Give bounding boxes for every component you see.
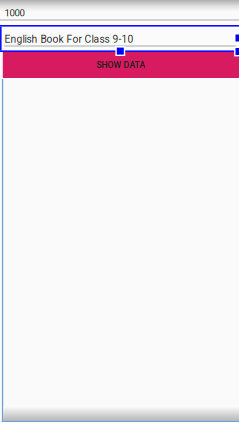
button[interactable]: SHOW DATA (0, 52, 239, 78)
staticText: 1000 (4, 7, 24, 19)
staticText: English Book For Class 9-10 (5, 33, 134, 45)
button[interactable]: English Book For Class 9-10 (0, 25, 239, 52)
staticText: SHOW DATA (96, 60, 145, 70)
